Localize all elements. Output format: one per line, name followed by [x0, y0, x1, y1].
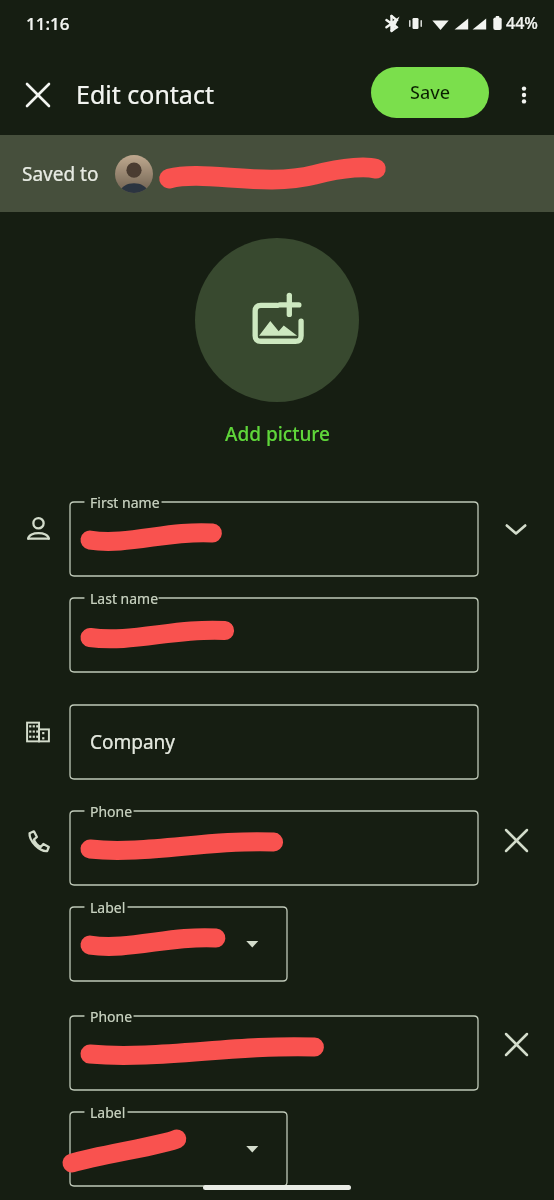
- button[interactable]: More options: [502, 73, 546, 117]
- other: Name: [16, 507, 60, 551]
- button[interactable]: Add picture: [195, 238, 359, 402]
- button[interactable]: Save: [371, 67, 489, 118]
- staticText: 44%: [506, 12, 538, 34]
- staticText: Label: [90, 898, 126, 917]
- staticText: Company: [90, 729, 176, 755]
- staticText: 11:16: [26, 12, 70, 35]
- button[interactable]: Close: [16, 73, 60, 117]
- staticText: Edit contact: [76, 77, 214, 111]
- button[interactable]: Phone: [70, 811, 478, 885]
- staticText: Label: [90, 1103, 126, 1122]
- other: Phone: [16, 818, 60, 862]
- staticText: Last name: [90, 589, 159, 608]
- staticText: Save: [410, 80, 451, 105]
- button[interactable]: Phone: [70, 1016, 478, 1090]
- staticText: Phone: [90, 1007, 133, 1026]
- staticText: Saved to: [22, 161, 99, 187]
- button[interactable]: Company: [70, 705, 478, 779]
- button[interactable]: Saved to: [0, 135, 554, 212]
- button[interactable]: Last name: [70, 598, 478, 672]
- button[interactable]: Add picture: [219, 419, 336, 449]
- staticText: Phone: [90, 802, 133, 821]
- button[interactable]: Expand name fields: [494, 507, 538, 551]
- button[interactable]: Label: [70, 907, 287, 981]
- button[interactable]: Delete: [494, 818, 538, 862]
- button[interactable]: First name: [70, 502, 478, 576]
- button[interactable]: Delete: [494, 1022, 538, 1066]
- other: Company: [16, 710, 60, 754]
- staticText: First name: [90, 493, 160, 512]
- button[interactable]: Label: [70, 1112, 287, 1186]
- staticText: Add picture: [225, 421, 330, 447]
